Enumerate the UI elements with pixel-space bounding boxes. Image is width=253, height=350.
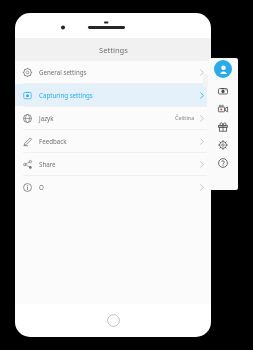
staticText: Feedback (39, 137, 67, 145)
button[interactable]: Help (207, 154, 238, 172)
button[interactable]: Account (214, 60, 232, 78)
staticText: O (39, 183, 44, 191)
button[interactable]: Jazyk (15, 107, 211, 129)
button[interactable]: Share (15, 153, 211, 175)
staticText: Capturing settings (39, 91, 93, 99)
button[interactable]: Video (207, 100, 238, 118)
button[interactable]: Settings (207, 136, 238, 154)
staticText: Share (39, 160, 56, 168)
staticText: Čeština (175, 114, 195, 122)
staticText: Jazyk (39, 114, 54, 122)
button[interactable]: Photo (207, 82, 238, 100)
button[interactable]: Gifts (207, 118, 238, 136)
button[interactable]: O (15, 176, 211, 198)
staticText: Settings (99, 45, 128, 55)
button[interactable]: General settings (15, 61, 211, 83)
button[interactable]: Feedback (15, 130, 211, 152)
button[interactable]: Capturing settings (15, 84, 211, 106)
staticText: General settings (39, 68, 87, 76)
